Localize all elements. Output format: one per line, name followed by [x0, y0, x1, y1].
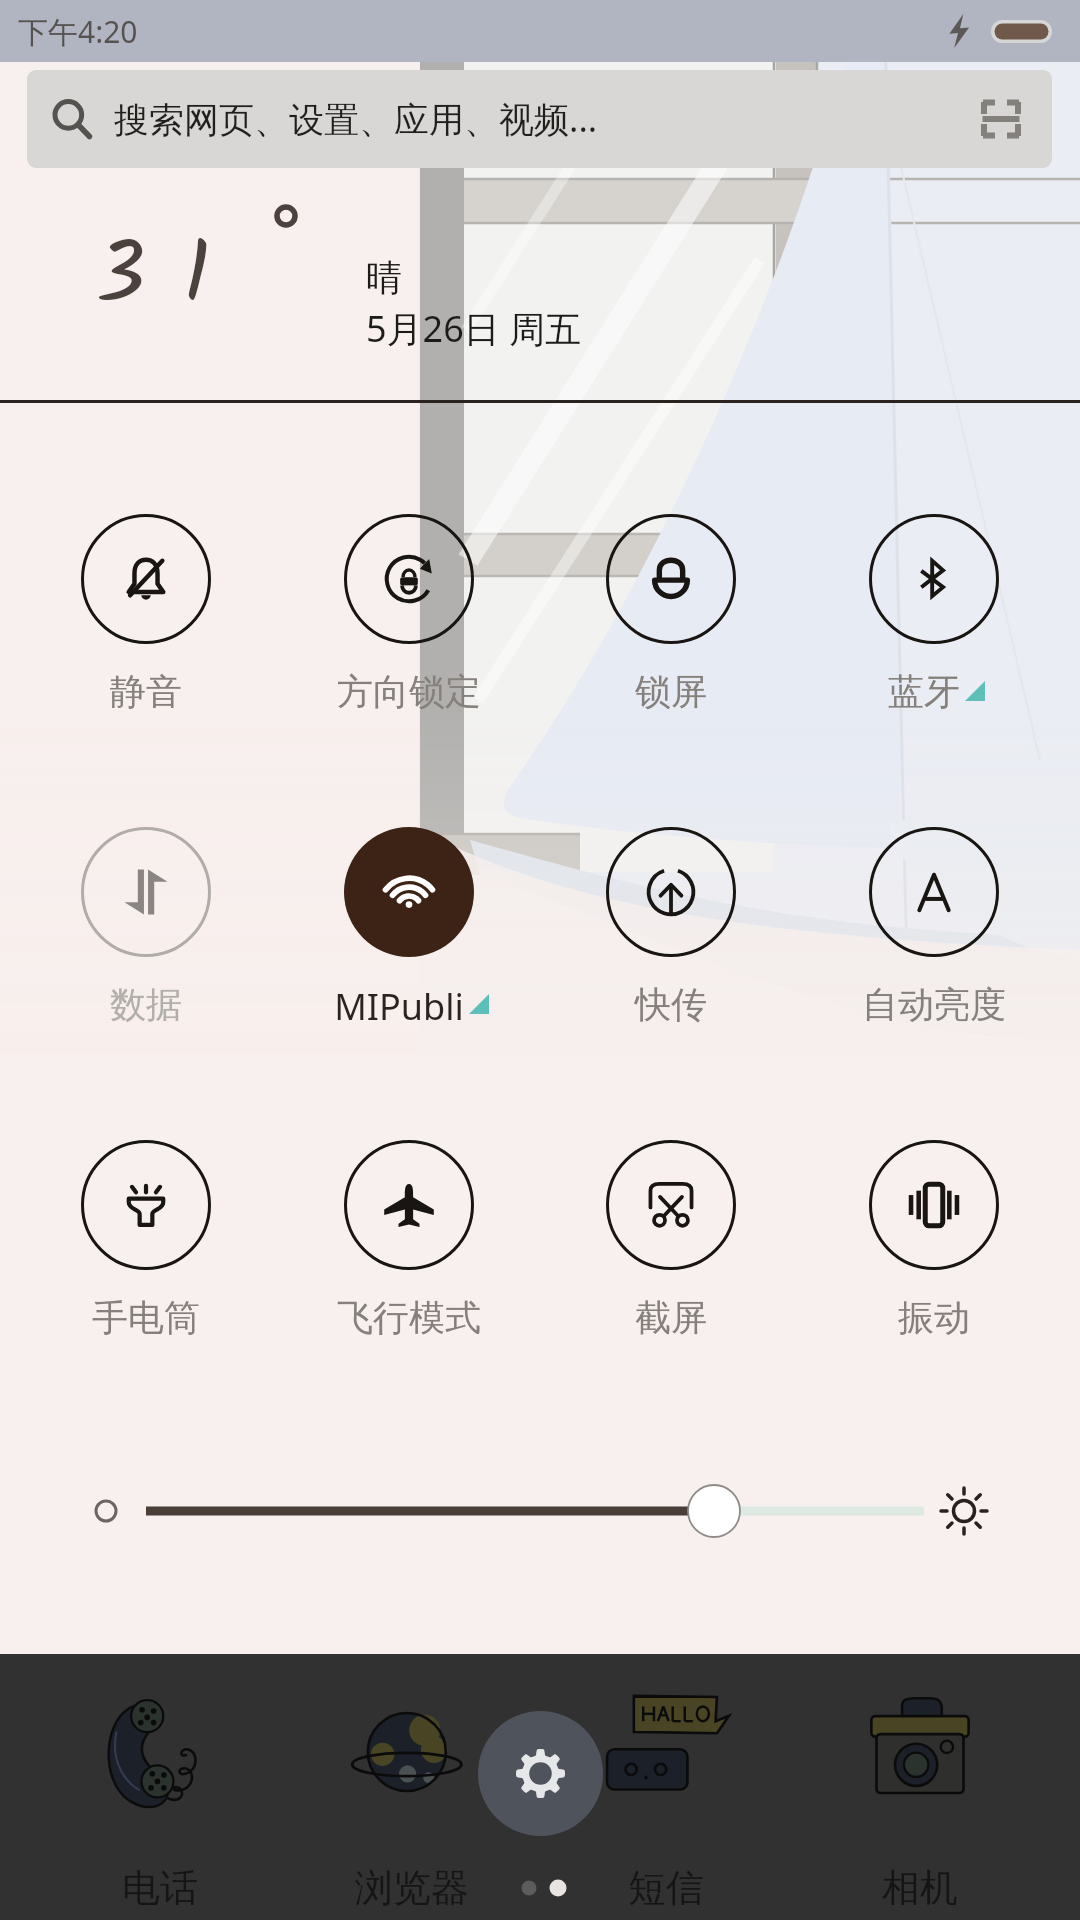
staticText: 晴: [366, 255, 402, 300]
staticText: 锁屏: [635, 669, 707, 714]
button[interactable]: 数据: [21, 821, 271, 1021]
button[interactable]: 快传: [546, 821, 796, 1021]
button[interactable]: 飞行模式: [284, 1134, 534, 1334]
staticText: 相机: [795, 1864, 1045, 1912]
button[interactable]: Settings: [478, 1711, 603, 1836]
staticText: 快传: [635, 982, 707, 1027]
staticText: 下午4:20: [18, 11, 138, 52]
button[interactable]: 浏览器: [287, 1654, 537, 1920]
button[interactable]: [0, 1451, 1080, 1571]
staticText: 方向锁定: [337, 669, 481, 714]
staticText: 浏览器: [287, 1864, 537, 1912]
staticText: 蓝牙: [888, 669, 960, 714]
staticText: 1: [183, 210, 211, 347]
button[interactable]: 搜索网页、设置、应用、视频...: [27, 70, 1052, 168]
staticText: 截屏: [635, 1295, 707, 1340]
button[interactable]: 电话: [35, 1654, 285, 1920]
staticText: 电话: [35, 1864, 285, 1912]
staticText: MIPubli: [334, 982, 464, 1031]
button[interactable]: 静音: [21, 508, 271, 708]
button[interactable]: Scan QR code: [976, 94, 1026, 144]
button[interactable]: 相机: [795, 1654, 1045, 1920]
button[interactable]: 锁屏: [546, 508, 796, 708]
button[interactable]: 振动: [809, 1134, 1059, 1334]
button[interactable]: 蓝牙: [809, 508, 1059, 708]
button[interactable]: 短信: [541, 1654, 791, 1920]
staticText: 振动: [898, 1295, 970, 1340]
staticText: 3: [96, 210, 146, 347]
button[interactable]: MIPubli: [284, 821, 534, 1021]
button[interactable]: 截屏: [546, 1134, 796, 1334]
button[interactable]: 自动亮度: [809, 821, 1059, 1021]
staticText: 5月26日 周五: [366, 304, 582, 353]
button[interactable]: 方向锁定: [284, 508, 534, 708]
button[interactable]: 3: [0, 0, 1080, 401]
button[interactable]: 手电筒: [21, 1134, 271, 1334]
staticText: 搜索网页、设置、应用、视频...: [114, 95, 598, 143]
staticText: 静音: [110, 669, 182, 714]
staticText: 手电筒: [92, 1295, 200, 1340]
staticText: 自动亮度: [862, 982, 1006, 1027]
staticText: 飞行模式: [337, 1295, 481, 1340]
staticText: 短信: [541, 1864, 791, 1912]
staticText: 数据: [110, 982, 182, 1027]
